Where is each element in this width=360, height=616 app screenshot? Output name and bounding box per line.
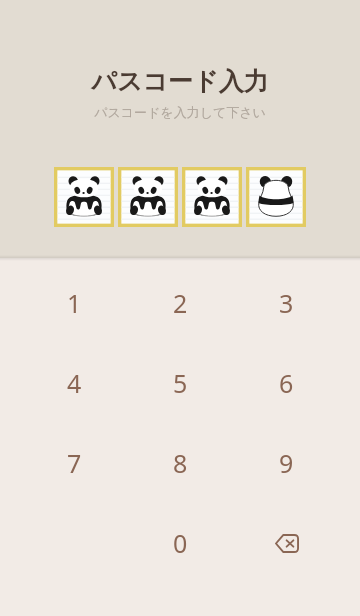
button[interactable]: 0 (144, 507, 216, 579)
staticText: 6 (279, 366, 294, 400)
staticText: 5 (173, 366, 188, 400)
button[interactable]: 6 (250, 347, 322, 419)
staticText: パスコード入力 (91, 66, 269, 97)
staticText: 2 (173, 286, 188, 320)
button[interactable]: 3 (250, 267, 322, 339)
staticText: 8 (173, 446, 188, 480)
button[interactable]: 8 (144, 427, 216, 499)
button[interactable]: Delete (250, 507, 322, 579)
staticText: 3 (279, 286, 294, 320)
staticText: パスコードを入力して下さい (94, 104, 266, 120)
button[interactable]: 7 (38, 427, 110, 499)
button[interactable]: 2 (144, 267, 216, 339)
staticText: 7 (67, 446, 82, 480)
staticText: 4 (67, 366, 82, 400)
button[interactable]: 5 (144, 347, 216, 419)
staticText: 1 (67, 286, 82, 320)
button[interactable]: 4 (38, 347, 110, 419)
staticText: 0 (173, 526, 188, 560)
button[interactable]: 1 (38, 267, 110, 339)
button[interactable]: 9 (250, 427, 322, 499)
staticText: 9 (279, 446, 294, 480)
